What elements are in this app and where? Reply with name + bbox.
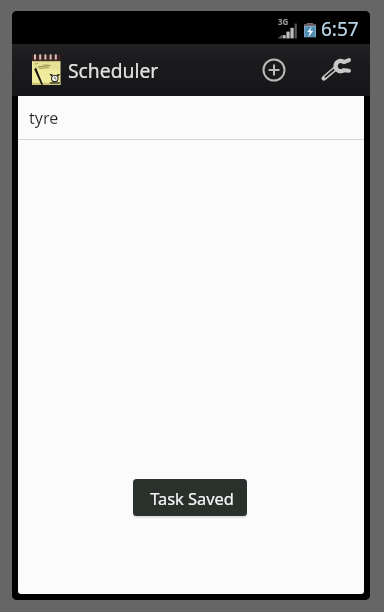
button[interactable]: Settings xyxy=(309,44,361,95)
button[interactable]: Add task xyxy=(248,44,300,95)
button[interactable]: tyre xyxy=(18,96,364,140)
staticText: Scheduler xyxy=(68,57,159,83)
staticText: Task Saved xyxy=(150,487,234,509)
staticText: 6:57 xyxy=(321,16,359,42)
staticText: tyre xyxy=(29,107,59,129)
staticText: 3G xyxy=(278,16,289,27)
button[interactable]: Scheduler xyxy=(12,49,167,91)
